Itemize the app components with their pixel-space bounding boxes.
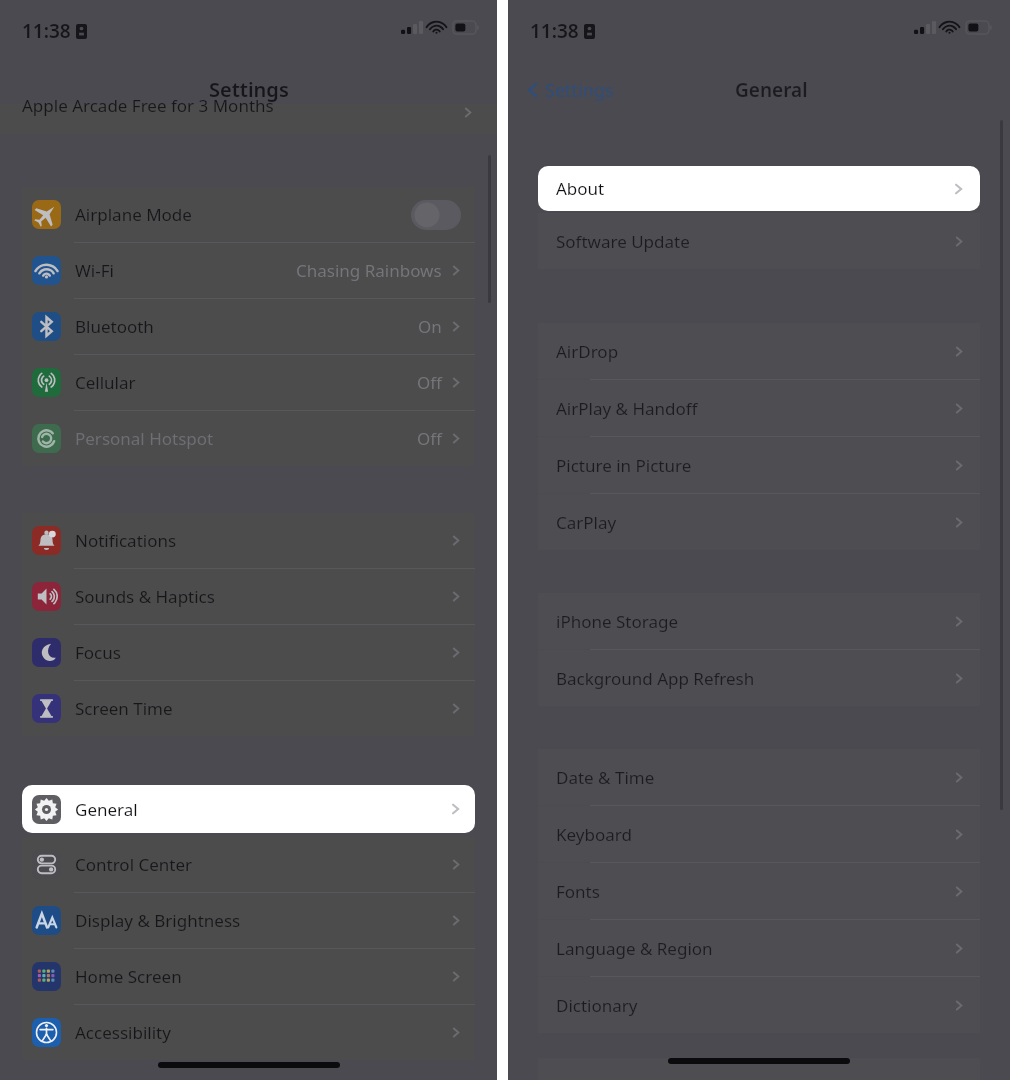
staticText: Notifications — [75, 529, 177, 552]
staticText: Settings — [209, 76, 289, 103]
staticText: Focus — [75, 641, 121, 664]
staticText: Airplane Mode — [75, 203, 192, 226]
button[interactable]: AirDrop — [556, 323, 964, 379]
staticText: On — [418, 315, 442, 338]
button[interactable]: General — [22, 785, 475, 833]
button[interactable]: Display & Brightness — [32, 893, 461, 948]
button[interactable]: About — [538, 166, 980, 211]
staticText: Fonts — [556, 880, 600, 903]
staticText: Off — [417, 427, 442, 450]
button[interactable]: Keyboard — [556, 806, 964, 862]
button[interactable]: Settings — [526, 70, 614, 110]
button[interactable]: Focus — [32, 625, 461, 680]
button[interactable]: Personal Hotspot — [32, 411, 461, 466]
staticText: Chasing Rainbows — [296, 259, 442, 282]
button[interactable]: iPhone Storage — [556, 593, 964, 649]
staticText: Personal Hotspot — [75, 427, 214, 450]
button[interactable]: Background App Refresh — [556, 650, 964, 706]
staticText: 11:38 — [530, 18, 579, 44]
staticText: Control Center — [75, 853, 193, 876]
button[interactable]: Language & Region — [556, 920, 964, 976]
button[interactable]: AirPlay & Handoff — [556, 380, 964, 436]
staticText: Keyboard — [556, 823, 632, 846]
button[interactable]: Notifications — [32, 513, 461, 568]
button[interactable]: Accessibility — [32, 1005, 461, 1060]
staticText: AirDrop — [556, 340, 619, 363]
staticText: iPhone Storage — [556, 610, 678, 633]
button[interactable]: Screen Time — [32, 681, 461, 736]
staticText: General — [735, 77, 808, 103]
staticText: Background App Refresh — [556, 667, 755, 690]
button[interactable]: Sounds & Haptics — [32, 569, 461, 624]
button[interactable]: Wi-Fi — [32, 243, 461, 298]
staticText: Picture in Picture — [556, 454, 692, 477]
staticText: Dictionary — [556, 994, 638, 1017]
button[interactable]: Control Center — [32, 837, 461, 892]
staticText: Off — [417, 371, 442, 394]
staticText: Display & Brightness — [75, 909, 241, 932]
staticText: AirPlay & Handoff — [556, 397, 698, 420]
button[interactable]: CarPlay — [556, 494, 964, 550]
button[interactable]: Picture in Picture — [556, 437, 964, 493]
staticText: Bluetooth — [75, 315, 154, 338]
button[interactable]: Date & Time — [556, 749, 964, 805]
button[interactable]: Software Update — [556, 213, 964, 269]
button[interactable]: Cellular — [32, 355, 461, 410]
staticText: Screen Time — [75, 697, 173, 720]
button[interactable]: Bluetooth — [32, 299, 461, 354]
button[interactable]: Home Screen — [32, 949, 461, 1004]
staticText: Cellular — [75, 371, 136, 394]
button[interactable]: Airplane Mode — [32, 187, 461, 242]
staticText: CarPlay — [556, 511, 617, 534]
staticText: Home Screen — [75, 965, 182, 988]
staticText: 11:38 — [22, 18, 71, 44]
staticText: Date & Time — [556, 766, 655, 789]
button[interactable]: Dictionary — [556, 977, 964, 1033]
staticText: Wi-Fi — [75, 259, 114, 282]
staticText: Language & Region — [556, 937, 713, 960]
button[interactable]: Fonts — [556, 863, 964, 919]
staticText: Apple Arcade Free for 3 Months — [22, 94, 274, 117]
staticText: Software Update — [556, 230, 690, 253]
staticText: General — [75, 798, 138, 821]
staticText: Sounds & Haptics — [75, 585, 215, 608]
staticText: Accessibility — [75, 1021, 171, 1044]
staticText: About — [556, 177, 605, 200]
staticText: Settings — [545, 78, 614, 103]
